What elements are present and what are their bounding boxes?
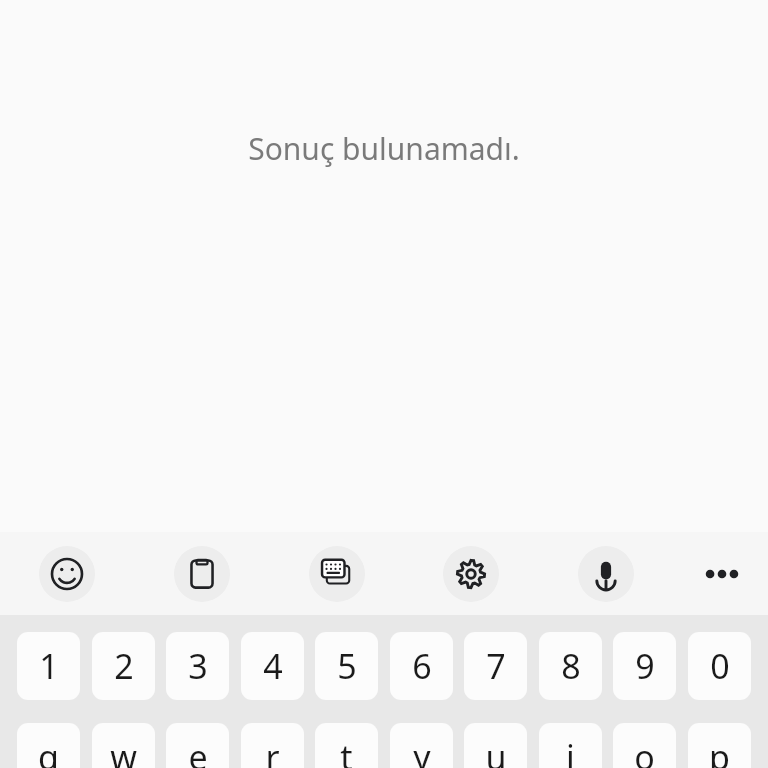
staticText: 2: [114, 643, 134, 689]
staticText: q: [38, 734, 59, 768]
button[interactable]: 1: [17, 632, 80, 700]
button[interactable]: Switch keyboard: [309, 546, 365, 602]
button[interactable]: More options: [694, 547, 750, 601]
staticText: 1: [39, 643, 59, 689]
staticText: Sonuç bulunamadı.: [248, 128, 520, 169]
button[interactable]: i: [539, 723, 602, 768]
button[interactable]: 8: [539, 632, 602, 700]
button[interactable]: Settings: [443, 546, 499, 602]
button[interactable]: 2: [92, 632, 155, 700]
button[interactable]: t: [315, 723, 378, 768]
button[interactable]: w: [92, 723, 155, 768]
staticText: 7: [486, 643, 506, 689]
staticText: 0: [710, 643, 730, 689]
staticText: i: [566, 734, 575, 768]
button[interactable]: 9: [613, 632, 676, 700]
button[interactable]: y: [390, 723, 453, 768]
button[interactable]: Voice input: [578, 546, 634, 602]
button[interactable]: r: [241, 723, 304, 768]
button[interactable]: e: [166, 723, 229, 768]
button[interactable]: 5: [315, 632, 378, 700]
button[interactable]: Emoji: [39, 546, 95, 602]
staticText: 8: [561, 643, 581, 689]
button[interactable]: 4: [241, 632, 304, 700]
button[interactable]: u: [464, 723, 527, 768]
staticText: t: [340, 734, 353, 768]
staticText: w: [110, 734, 137, 768]
staticText: p: [709, 734, 730, 768]
button[interactable]: 7: [464, 632, 527, 700]
button[interactable]: Clipboard: [174, 546, 230, 602]
staticText: r: [265, 734, 280, 768]
button[interactable]: 0: [688, 632, 751, 700]
staticText: u: [485, 734, 507, 768]
staticText: 9: [635, 643, 655, 689]
button[interactable]: o: [613, 723, 676, 768]
staticText: 5: [337, 643, 357, 689]
button[interactable]: p: [688, 723, 751, 768]
staticText: o: [634, 734, 655, 768]
staticText: 3: [188, 643, 208, 689]
staticText: e: [188, 734, 208, 768]
button[interactable]: q: [17, 723, 80, 768]
staticText: 6: [412, 643, 432, 689]
button[interactable]: 6: [390, 632, 453, 700]
staticText: 4: [263, 643, 283, 689]
button[interactable]: 3: [166, 632, 229, 700]
staticText: y: [413, 734, 431, 768]
